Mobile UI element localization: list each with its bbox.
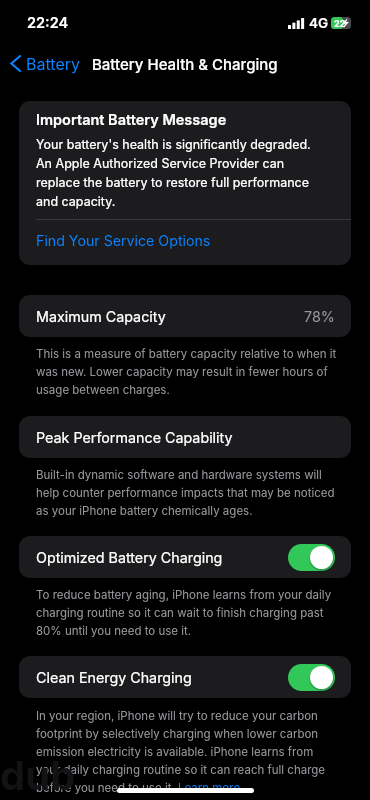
staticText: dub	[0, 751, 76, 799]
staticText: Find Your Service Options	[36, 232, 211, 249]
staticText: Your battery's health is significantly d…	[36, 137, 326, 209]
staticText: 78%	[304, 308, 335, 325]
staticText: 22:24	[27, 14, 69, 32]
staticText: This is a measure of battery capacity re…	[36, 347, 338, 397]
staticText: Built-in dynamic software and hardware s…	[36, 468, 338, 518]
staticText: Important Battery Message	[36, 111, 227, 129]
button[interactable]: Peak Performance Capability	[19, 416, 351, 458]
button[interactable]: Clean Energy Charging	[19, 656, 351, 698]
staticText: To reduce battery aging, iPhone learns f…	[36, 588, 338, 638]
staticText: Optimized Battery Charging	[36, 549, 223, 566]
button[interactable]: Toggle switch, on	[288, 544, 335, 571]
button[interactable]: Toggle switch, on	[288, 664, 335, 691]
button[interactable]: Optimized Battery Charging	[19, 536, 351, 578]
staticText: Battery	[26, 54, 80, 73]
staticText: Maximum Capacity	[36, 308, 166, 325]
button[interactable]: Find Your Service Options	[19, 220, 351, 265]
button[interactable]: Back to Battery	[0, 54, 86, 73]
staticText: Peak Performance Capability	[36, 429, 233, 446]
staticText: 22	[334, 18, 346, 29]
staticText: Clean Energy Charging	[36, 669, 192, 686]
staticText: Battery Health & Charging	[92, 55, 278, 73]
staticText: 4G	[309, 15, 329, 31]
staticText: In your region, iPhone will try to reduc…	[36, 709, 338, 795]
button[interactable]: Maximum Capacity	[19, 295, 351, 337]
